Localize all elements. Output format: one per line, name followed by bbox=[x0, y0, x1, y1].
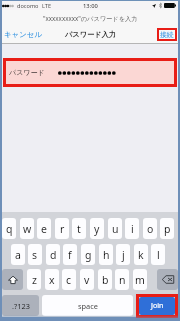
staticText: l bbox=[157, 248, 160, 262]
button[interactable]: o bbox=[143, 218, 157, 239]
button[interactable]: i bbox=[125, 218, 139, 239]
staticText: p bbox=[164, 222, 171, 236]
staticText: t bbox=[77, 222, 81, 236]
button[interactable]: h bbox=[99, 244, 113, 265]
staticText: n bbox=[119, 273, 126, 287]
button[interactable]: p bbox=[160, 218, 174, 239]
staticText: c bbox=[66, 273, 72, 287]
staticText: v bbox=[84, 273, 90, 287]
button[interactable]: t bbox=[72, 218, 86, 239]
staticText: b bbox=[102, 273, 109, 287]
staticText: w bbox=[23, 222, 32, 236]
button[interactable]: j bbox=[116, 244, 130, 265]
button[interactable]: k bbox=[134, 244, 148, 265]
staticText: a bbox=[15, 248, 21, 262]
staticText: q bbox=[6, 222, 13, 236]
button[interactable]: .?123 bbox=[2, 295, 39, 316]
staticText: i bbox=[131, 222, 134, 236]
staticText: k bbox=[138, 248, 144, 262]
button[interactable]: x bbox=[45, 269, 59, 290]
button[interactable]: w bbox=[20, 218, 34, 239]
staticText: d bbox=[50, 248, 57, 262]
staticText: .?123 bbox=[12, 301, 30, 311]
staticText: e bbox=[41, 222, 47, 236]
staticText: パスワード入力 bbox=[65, 30, 116, 39]
button[interactable]: Backspace bbox=[157, 269, 178, 290]
staticText: Join bbox=[151, 301, 164, 311]
staticText: 接続 bbox=[160, 30, 174, 39]
button[interactable]: b bbox=[98, 269, 112, 290]
button[interactable]: 接続 bbox=[157, 28, 177, 41]
staticText: g bbox=[85, 248, 92, 262]
button[interactable]: l bbox=[151, 244, 165, 265]
button[interactable]: a bbox=[11, 244, 25, 265]
button[interactable]: d bbox=[46, 244, 60, 265]
button[interactable]: s bbox=[28, 244, 42, 265]
staticText: LTE bbox=[42, 2, 52, 10]
button[interactable]: y bbox=[90, 218, 104, 239]
button[interactable]: u bbox=[108, 218, 122, 239]
button[interactable]: space bbox=[42, 295, 133, 316]
button[interactable]: Shift bbox=[2, 269, 23, 290]
staticText: h bbox=[103, 248, 110, 262]
staticText: o bbox=[147, 222, 154, 236]
staticText: j bbox=[122, 248, 125, 262]
staticText: パスワード bbox=[9, 68, 45, 77]
button[interactable]: e bbox=[37, 218, 51, 239]
staticText: r bbox=[60, 222, 65, 236]
staticText: z bbox=[32, 273, 37, 287]
staticText: 13:00 bbox=[83, 2, 98, 10]
button[interactable]: r bbox=[55, 218, 69, 239]
button[interactable]: Join bbox=[139, 297, 175, 315]
staticText: space bbox=[78, 301, 98, 311]
button[interactable]: v bbox=[80, 269, 94, 290]
staticText: f bbox=[68, 248, 72, 262]
staticText: "xxxxxxxxxx"のパスワードを入力 bbox=[43, 14, 138, 22]
button[interactable]: m bbox=[133, 269, 147, 290]
button[interactable]: q bbox=[2, 218, 16, 239]
staticText: docomo bbox=[17, 2, 39, 10]
staticText: y bbox=[94, 222, 100, 236]
button[interactable]: z bbox=[27, 269, 41, 290]
button[interactable]: パスワード bbox=[6, 61, 174, 84]
staticText: s bbox=[32, 248, 38, 262]
button[interactable]: f bbox=[63, 244, 77, 265]
button[interactable]: n bbox=[115, 269, 129, 290]
button[interactable]: c bbox=[62, 269, 76, 290]
staticText: u bbox=[112, 222, 119, 236]
button[interactable]: g bbox=[81, 244, 95, 265]
staticText: x bbox=[49, 273, 55, 287]
staticText: m bbox=[135, 273, 145, 287]
button[interactable]: キャンセル bbox=[2, 27, 44, 42]
